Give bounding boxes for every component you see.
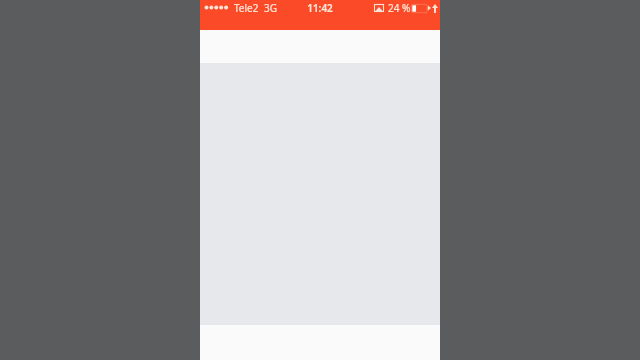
staticText: Tele2 xyxy=(234,1,259,15)
other: Battery 24 percent xyxy=(411,4,431,13)
other: Screen mirroring xyxy=(374,4,384,12)
other: Location xyxy=(432,4,438,13)
staticText: 11:42 xyxy=(200,1,440,15)
other: Signal strength xyxy=(204,4,231,11)
staticText: 24 % xyxy=(388,1,411,15)
other: Alarm xyxy=(428,4,431,12)
staticText: 3G xyxy=(264,1,277,15)
button[interactable]: Status bar xyxy=(200,0,440,30)
